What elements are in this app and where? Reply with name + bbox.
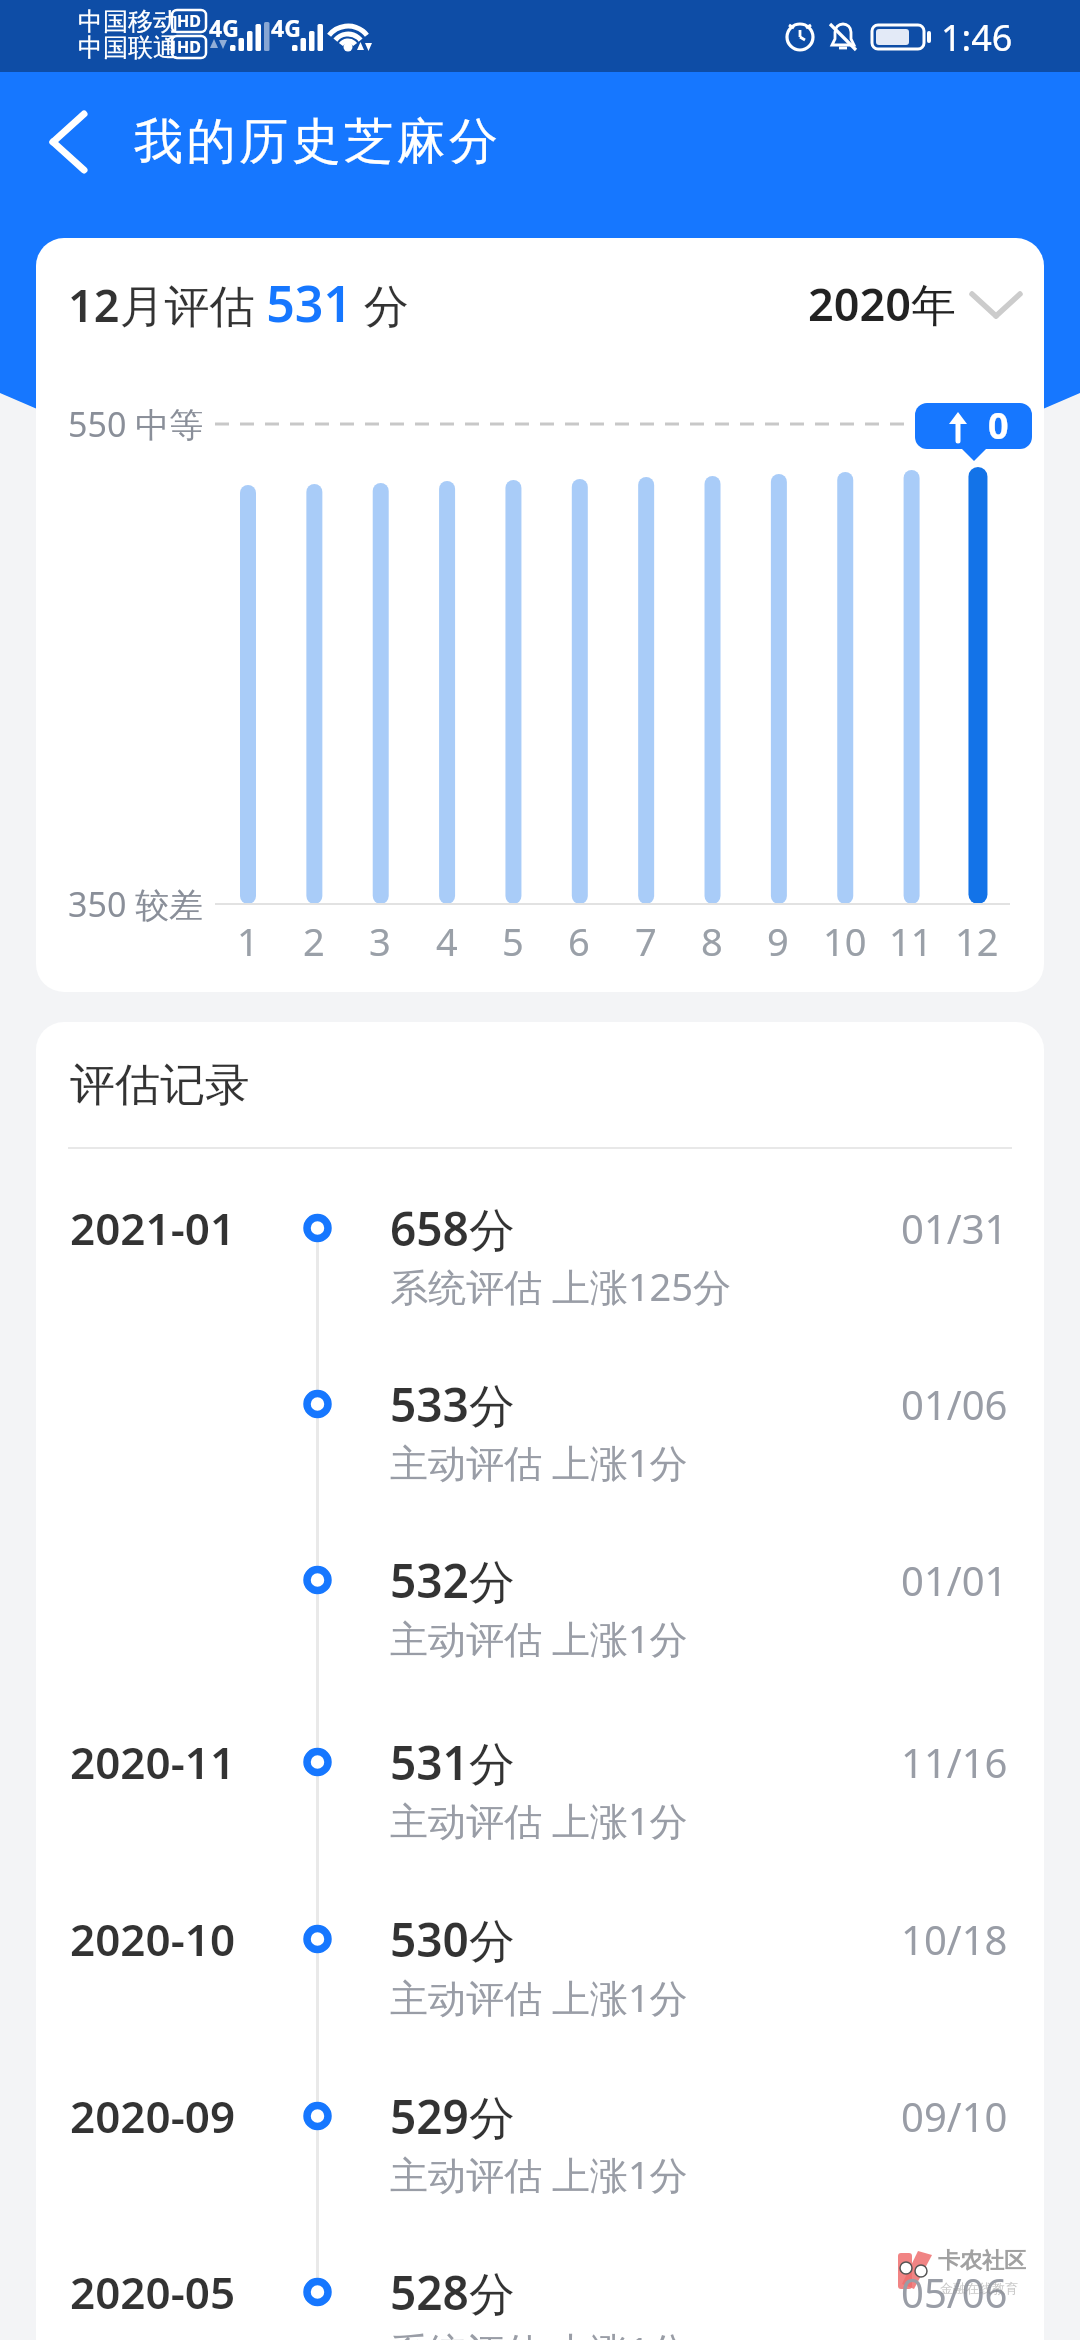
staticText: 658分 bbox=[390, 1197, 515, 1260]
staticText: 2020-10 bbox=[70, 1909, 236, 1969]
staticText: 532分 bbox=[390, 1549, 515, 1612]
staticText: 2020-05 bbox=[70, 2262, 236, 2322]
staticText: 1:46 bbox=[941, 13, 1013, 62]
staticText: 10/18 bbox=[901, 1912, 1008, 1966]
staticText: 2020-09 bbox=[70, 2086, 236, 2146]
staticText: 2021-01 bbox=[70, 1198, 236, 1258]
staticText: 0 bbox=[988, 401, 1009, 450]
staticText: 5 bbox=[502, 915, 524, 967]
staticText: HD bbox=[177, 10, 201, 32]
staticText: 主动评估 上涨1分 bbox=[390, 1794, 688, 1846]
staticText: 主动评估 上涨1分 bbox=[390, 1436, 688, 1488]
staticText: 550 中等 bbox=[68, 401, 204, 447]
staticText: 09/10 bbox=[901, 2089, 1008, 2143]
staticText: 金融在线教育 bbox=[940, 2280, 1018, 2296]
staticText: 530分 bbox=[390, 1908, 515, 1971]
staticText: 中国联通 bbox=[78, 32, 178, 63]
staticText: 01/01 bbox=[901, 1553, 1008, 1607]
staticText: 评估记录 bbox=[70, 1057, 250, 1114]
staticText: 2020年 bbox=[808, 273, 956, 334]
staticText: 4G bbox=[209, 12, 239, 43]
staticText: 中国移动 bbox=[78, 6, 178, 37]
staticText: 3 bbox=[369, 915, 391, 967]
staticText: 05/06 bbox=[901, 2265, 1008, 2319]
staticText: 531分 bbox=[390, 1731, 515, 1794]
staticText: 系统评估 上涨125分 bbox=[390, 1260, 732, 1312]
staticText: 6 bbox=[568, 915, 590, 967]
staticText: HD bbox=[177, 36, 201, 58]
staticText: 4G bbox=[271, 12, 301, 43]
staticText: 01/31 bbox=[901, 1201, 1008, 1255]
staticText: 10 bbox=[823, 915, 867, 967]
staticText: 我的历史芝麻分 bbox=[134, 111, 502, 173]
staticText: 01/06 bbox=[901, 1377, 1008, 1431]
staticText: 12 bbox=[955, 915, 999, 967]
staticText: 533分 bbox=[390, 1373, 515, 1436]
staticText: 529分 bbox=[390, 2085, 515, 2148]
staticText: 主动评估 上涨1分 bbox=[390, 1971, 688, 2023]
staticText: 8 bbox=[701, 915, 723, 967]
staticText: 9 bbox=[767, 915, 789, 967]
staticText: 卡农社区 bbox=[938, 2247, 1026, 2275]
staticText: 系统评估 上涨1分 bbox=[390, 2324, 688, 2340]
staticText: 528分 bbox=[390, 2261, 515, 2324]
staticText: 11/16 bbox=[901, 1735, 1008, 1789]
staticText: 主动评估 上涨1分 bbox=[390, 1612, 688, 1664]
staticText: 4 bbox=[436, 915, 458, 967]
staticText: 2020-11 bbox=[70, 1732, 236, 1792]
staticText: 2 bbox=[303, 915, 325, 967]
staticText: 12月评估 531 分 bbox=[68, 269, 409, 337]
staticText: 11 bbox=[889, 915, 933, 967]
staticText: 350 较差 bbox=[68, 881, 204, 927]
staticText: 1 bbox=[237, 915, 259, 967]
staticText: 主动评估 上涨1分 bbox=[390, 2148, 688, 2200]
staticText: 7 bbox=[635, 915, 657, 967]
